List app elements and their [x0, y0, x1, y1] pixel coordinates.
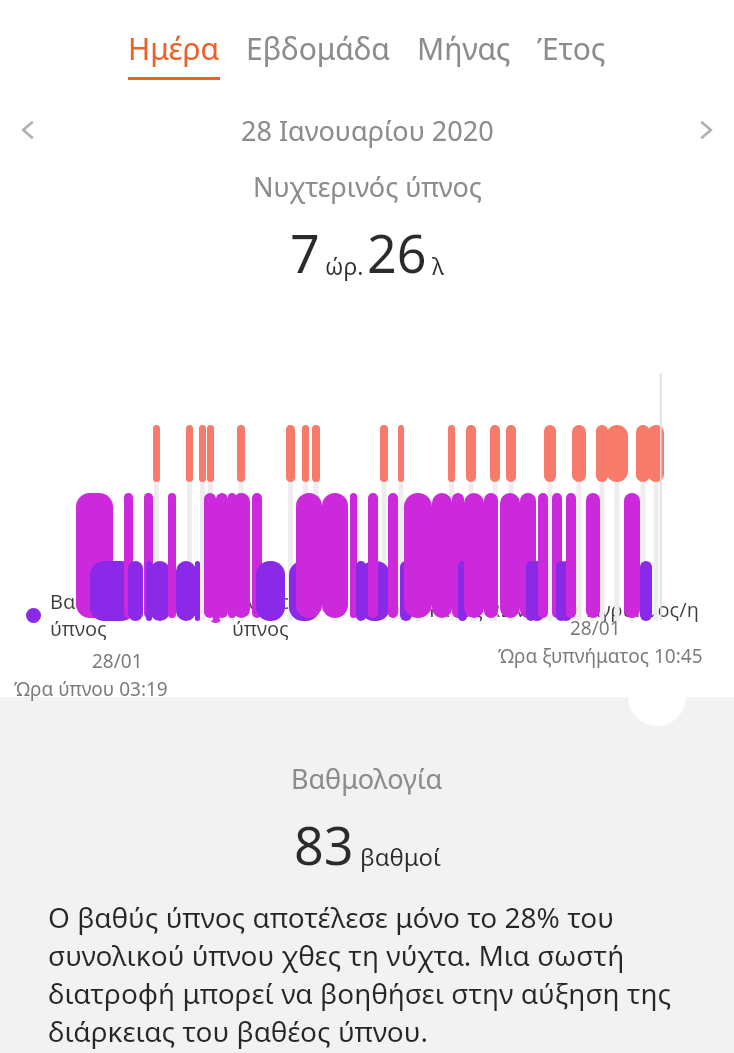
- staticText: Νυχτερινός ύπνος: [253, 168, 482, 205]
- staticText: 7: [290, 217, 320, 288]
- staticText: βαθμοί: [360, 840, 441, 873]
- staticText: Βαθύς: [50, 588, 109, 615]
- button[interactable]: Ελαφρύς: [208, 588, 314, 642]
- button[interactable]: Βαθύς: [26, 588, 109, 642]
- button[interactable]: Next day: [678, 102, 734, 158]
- staticText: Ύπνος REM: [422, 596, 530, 623]
- staticText: Μήνας: [417, 28, 511, 69]
- button[interactable]: Add sleep record: [628, 668, 686, 726]
- button[interactable]: Previous day: [0, 102, 56, 158]
- staticText: 28/01: [92, 648, 143, 674]
- staticText: ώρ.: [325, 250, 364, 281]
- staticText: Ώρα ύπνου 03:19: [14, 676, 168, 702]
- staticText: 28/01: [570, 615, 621, 641]
- button[interactable]: Άγρυπνος/η: [562, 596, 699, 623]
- button[interactable]: Ύπνος REM: [398, 596, 530, 623]
- staticText: ύπνος: [50, 615, 107, 642]
- staticText: 26: [367, 217, 427, 288]
- staticText: Άγρυπνος/η: [586, 596, 699, 623]
- button[interactable]: Εβδομάδα: [246, 28, 391, 69]
- staticText: Έτος: [537, 28, 606, 69]
- staticText: Βαθμολογία: [291, 760, 443, 797]
- button[interactable]: Έτος: [537, 28, 606, 69]
- staticText: 83: [294, 809, 354, 880]
- staticText: ύπνος: [232, 615, 289, 642]
- button[interactable]: Μήνας: [417, 28, 511, 69]
- staticText: λ: [432, 250, 444, 281]
- staticText: Ώρα ξυπνήματος 10:45: [498, 643, 703, 669]
- staticText: 28 Ιανουαρίου 2020: [241, 112, 494, 149]
- staticText: Ελαφρύς: [232, 588, 314, 615]
- button[interactable]: Ημέρα: [128, 28, 220, 80]
- staticText: Ο βαθύς ύπνος αποτέλεσε μόνο το 28% του …: [48, 898, 690, 1050]
- staticText: Εβδομάδα: [246, 28, 391, 69]
- staticText: Ημέρα: [128, 28, 220, 69]
